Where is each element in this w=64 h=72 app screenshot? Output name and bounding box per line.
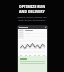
button[interactable] bbox=[19, 30, 23, 31]
button[interactable] bbox=[20, 41, 45, 52]
staticText: OPTIMIZE RUN bbox=[2, 4, 62, 9]
staticText: team's delivery performance. bbox=[2, 19, 62, 22]
button[interactable] bbox=[18, 56, 47, 72]
button[interactable] bbox=[25, 32, 46, 34]
staticText: Measure, analyse, improve your bbox=[2, 16, 62, 19]
staticText: AND DELIVERY bbox=[2, 9, 62, 14]
button[interactable]: Account bbox=[18, 26, 47, 29]
button[interactable]: Account bbox=[18, 26, 47, 72]
